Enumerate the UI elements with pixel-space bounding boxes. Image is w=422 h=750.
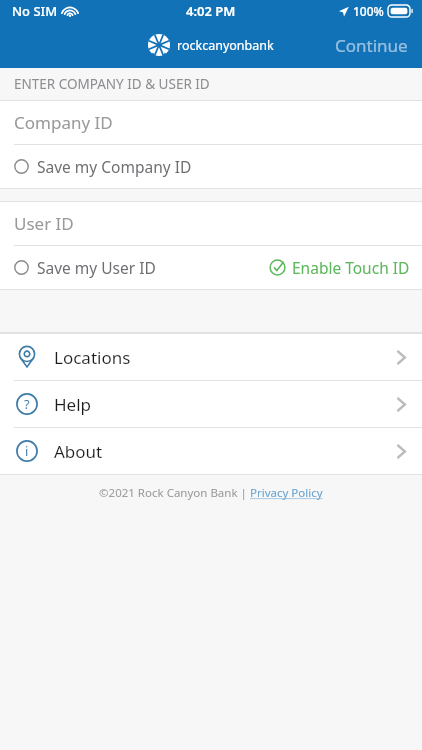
staticText: ENTER COMPANY ID & USER ID <box>14 75 210 93</box>
button[interactable]: Enable Touch ID <box>257 249 422 286</box>
staticText: Save my Company ID <box>37 156 192 177</box>
staticText: No SIM <box>12 2 58 20</box>
staticText: Company ID <box>14 111 113 134</box>
staticText: rockcanyonbank <box>177 37 274 54</box>
button[interactable]: User ID <box>0 202 422 245</box>
staticText: 100% <box>353 3 384 19</box>
button[interactable]: Save my User ID <box>0 249 166 286</box>
button[interactable]: i <box>0 428 422 474</box>
button[interactable]: Privacy Policy <box>250 485 323 501</box>
staticText: Locations <box>54 346 131 369</box>
staticText: Save my User ID <box>37 257 156 278</box>
staticText: About <box>54 440 103 463</box>
staticText: Continue <box>335 34 408 57</box>
button[interactable]: ? <box>0 381 422 427</box>
staticText: ? <box>24 395 30 413</box>
staticText: 4:02 PM <box>186 2 236 20</box>
staticText: Help <box>54 393 92 416</box>
staticText: ©2021 Rock Canyon Bank | <box>99 485 250 501</box>
button[interactable]: Save my Company ID <box>0 148 202 185</box>
button[interactable]: Company ID <box>0 101 422 144</box>
button[interactable]: Continue <box>321 26 422 65</box>
staticText: i <box>25 442 29 460</box>
staticText: Enable Touch ID <box>292 257 410 278</box>
button[interactable]: Locations <box>0 334 422 380</box>
staticText: User ID <box>14 212 74 235</box>
staticText: Privacy Policy <box>250 485 323 501</box>
